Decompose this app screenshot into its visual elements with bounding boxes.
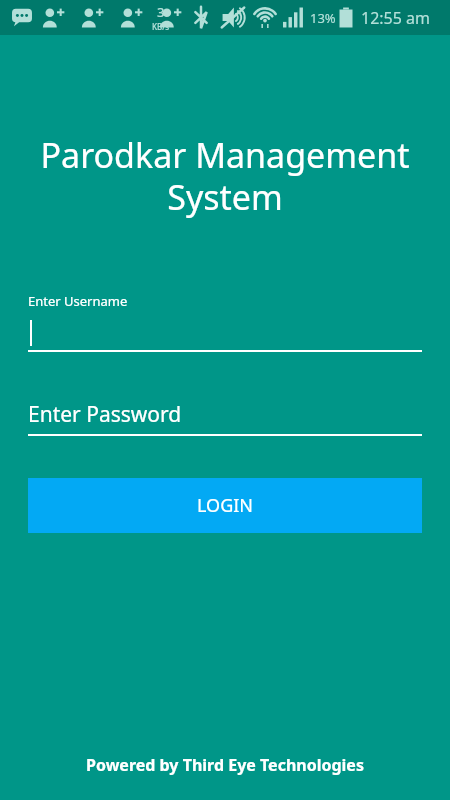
staticText: 13% <box>310 9 336 27</box>
staticText: Powered by Third Eye Technologies <box>0 754 450 776</box>
staticText: Enter Username <box>28 292 128 310</box>
staticText: KB/s <box>152 21 170 32</box>
staticText: 3 <box>157 3 165 21</box>
button[interactable]: Enter Username <box>28 292 422 352</box>
button[interactable]: Enter Password <box>28 400 422 436</box>
staticText: Enter Password <box>28 400 182 429</box>
staticText: Parodkar Management System <box>24 132 426 220</box>
button[interactable]: LOGIN <box>28 478 422 533</box>
staticText: 12:55 am <box>361 7 430 29</box>
staticText: LOGIN <box>197 493 254 518</box>
